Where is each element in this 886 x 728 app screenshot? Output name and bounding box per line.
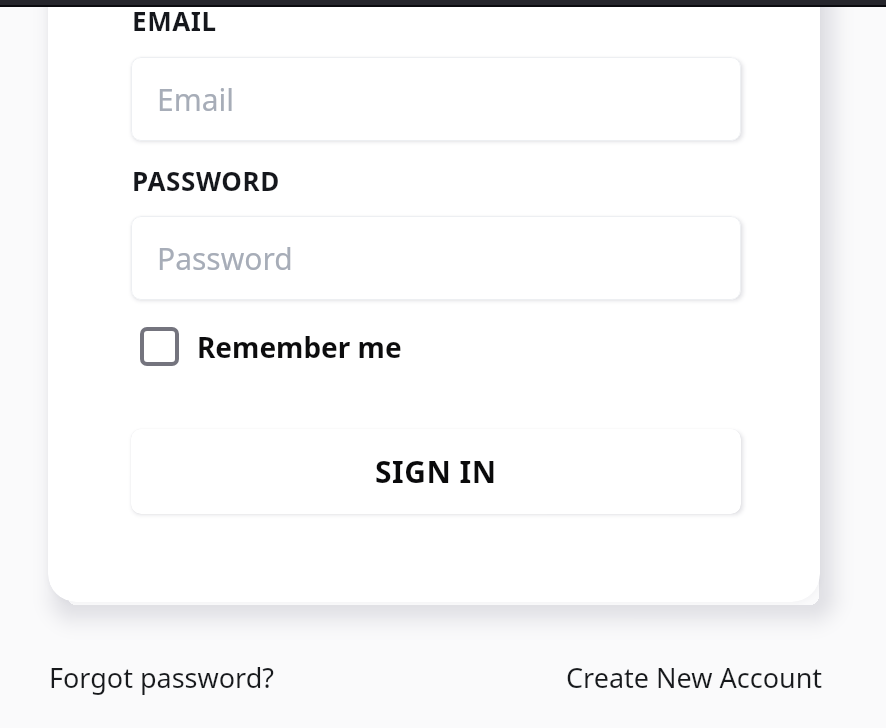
- button[interactable]: Create New Account: [566, 659, 823, 696]
- button[interactable]: Forgot password?: [49, 659, 275, 696]
- button[interactable]: Password: [131, 216, 741, 300]
- button[interactable]: Remember me: [140, 327, 402, 366]
- button[interactable]: Email: [131, 57, 741, 141]
- button[interactable]: SIGN IN: [131, 429, 741, 514]
- staticText: Remember me: [197, 328, 402, 366]
- staticText: SIGN IN: [375, 451, 497, 492]
- staticText: PASSWORD: [132, 163, 280, 198]
- staticText: Password: [157, 238, 293, 279]
- staticText: EMAIL: [132, 3, 217, 38]
- staticText: Email: [157, 79, 235, 120]
